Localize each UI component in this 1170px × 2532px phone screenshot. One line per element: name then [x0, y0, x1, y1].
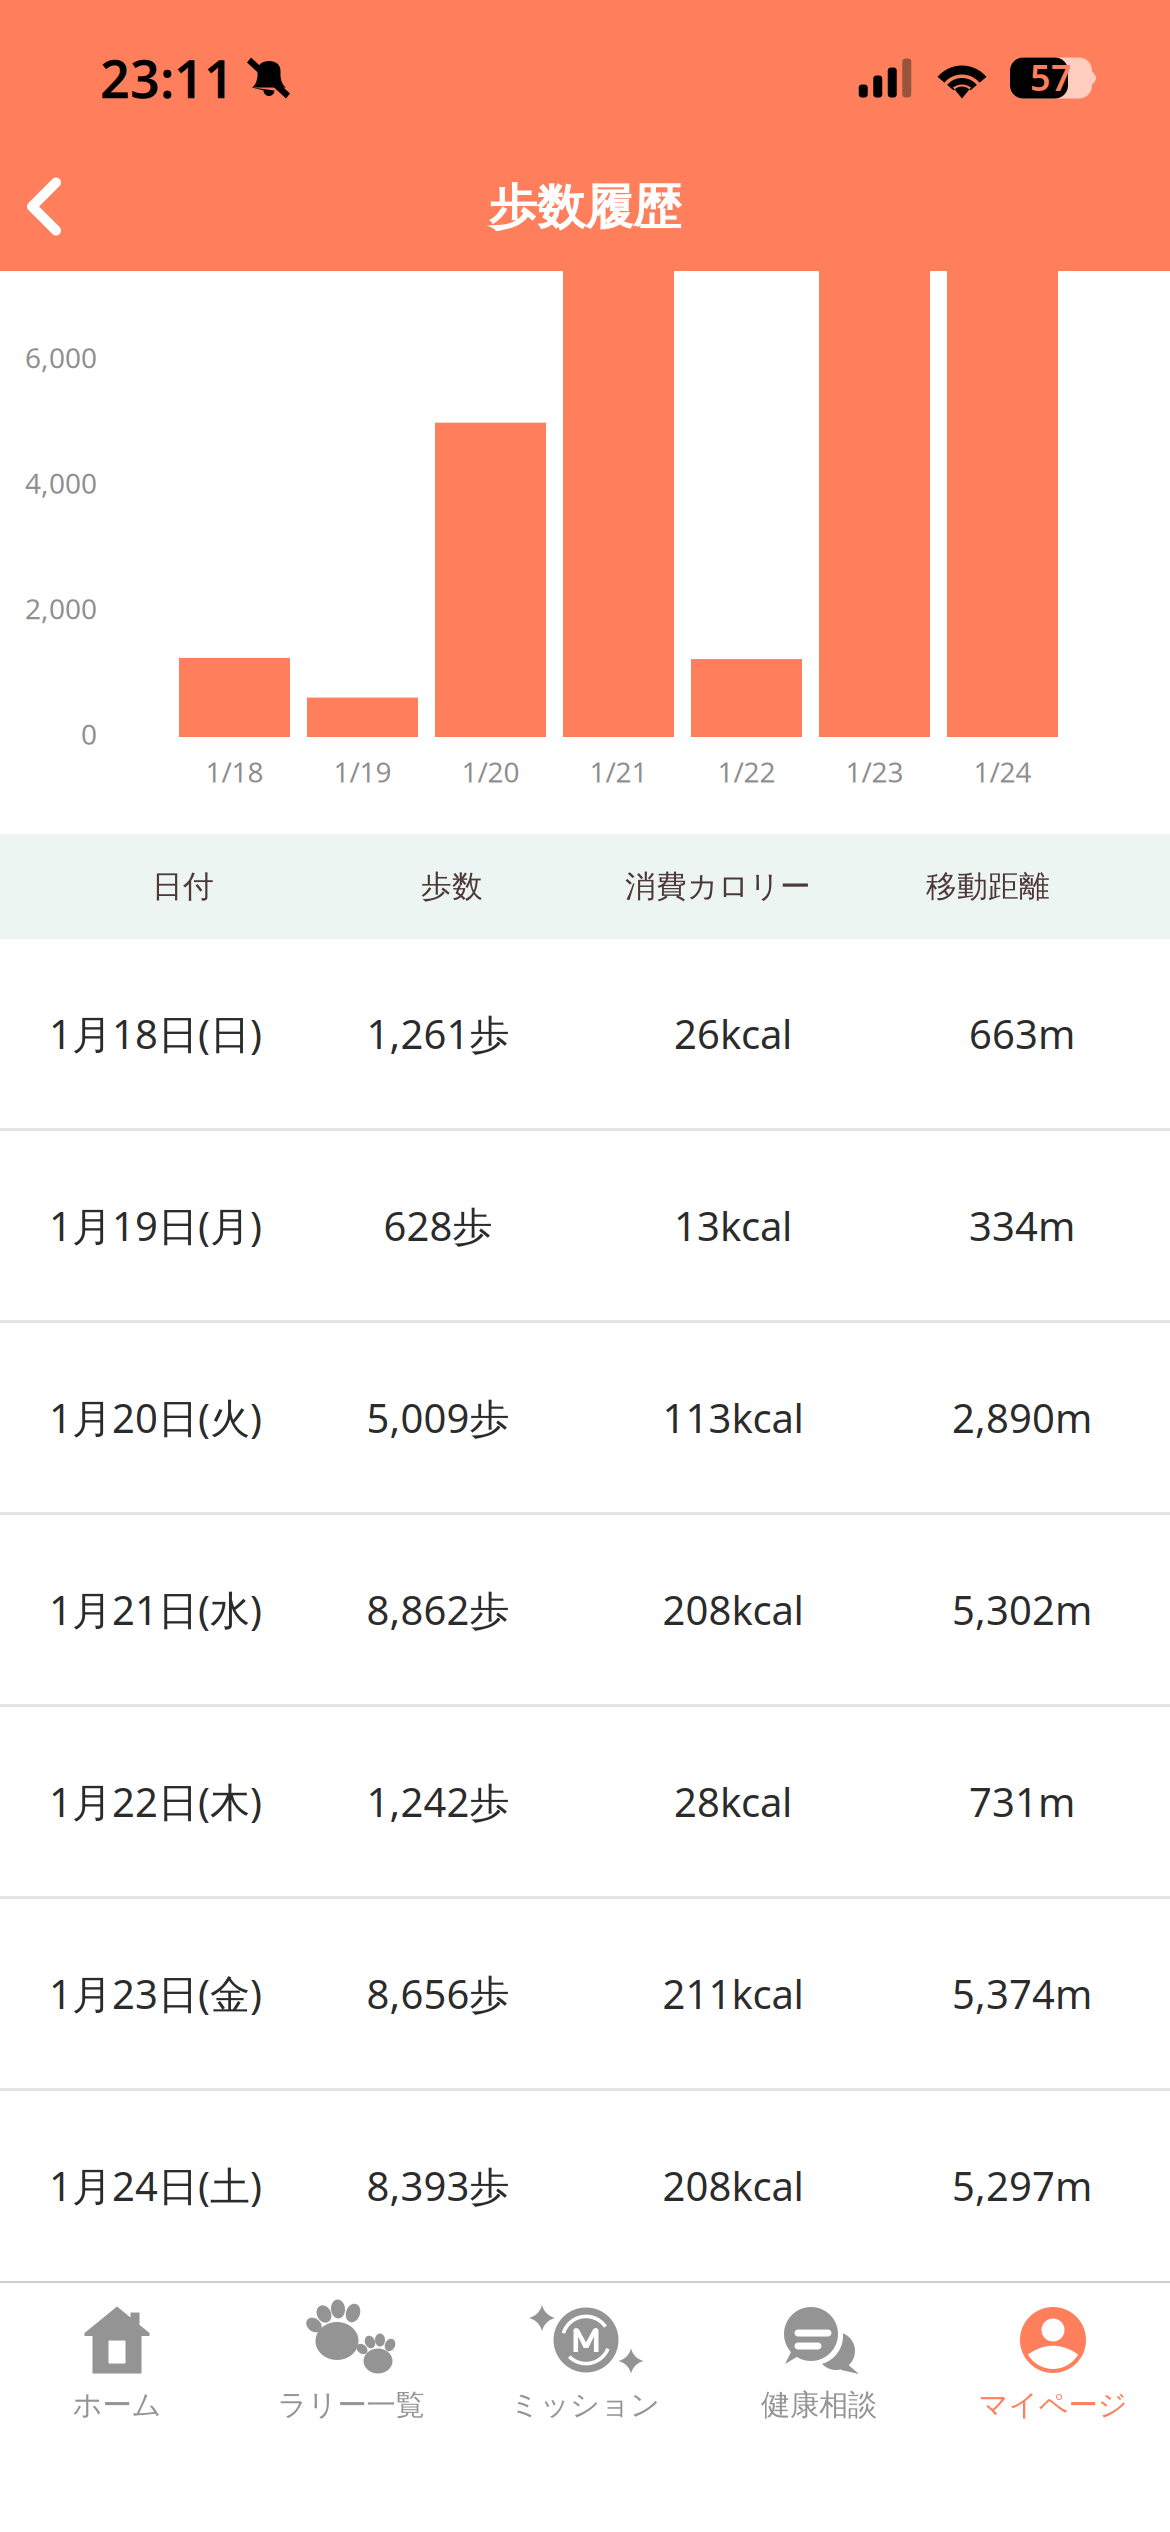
staticText: ミッション — [510, 2387, 660, 2423]
staticText: 歩数履歴 — [489, 178, 681, 237]
staticText: 5,302m — [952, 1583, 1092, 1636]
staticText: 0 — [81, 715, 97, 753]
staticText: 208kcal — [662, 1583, 803, 1636]
staticText: 1月18日(日) — [49, 1007, 262, 1060]
staticText: 8,862歩 — [366, 1583, 509, 1636]
staticText: 1月19日(月) — [49, 1199, 262, 1252]
staticText: 1/24 — [973, 753, 1031, 790]
staticText: 1/21 — [589, 753, 647, 790]
button[interactable]: ホーム — [0, 2283, 234, 2433]
staticText: 歩数 — [421, 868, 483, 905]
staticText: 334m — [969, 1199, 1075, 1252]
staticText: 1/22 — [717, 753, 775, 790]
button[interactable]: 健康相談 — [702, 2283, 936, 2433]
staticText: 628歩 — [383, 1199, 492, 1252]
staticText: 1月21日(水) — [49, 1583, 262, 1636]
staticText: 5,297m — [952, 2159, 1092, 2212]
staticText: 6,000 — [25, 339, 97, 376]
staticText: 1月24日(土) — [49, 2159, 262, 2212]
staticText: 1月22日(木) — [49, 1775, 262, 1828]
staticText: 5,009歩 — [366, 1391, 509, 1444]
staticText: 消費カロリー — [625, 868, 811, 905]
staticText: 日付 — [152, 868, 214, 905]
staticText: 健康相談 — [761, 2387, 877, 2423]
staticText: 1/23 — [845, 753, 903, 790]
staticText: マイページ — [978, 2387, 1127, 2423]
button[interactable]: ラリー一覧 — [234, 2283, 468, 2433]
staticText: 26kcal — [674, 1007, 792, 1060]
staticText: ラリー一覧 — [277, 2387, 424, 2423]
staticText: 28kcal — [674, 1775, 792, 1828]
staticText: 13kcal — [674, 1199, 792, 1252]
staticText: 23:11 — [100, 43, 234, 113]
staticText: 211kcal — [662, 1967, 803, 2020]
staticText: 113kcal — [662, 1391, 803, 1444]
button[interactable]: 戻る — [0, 132, 88, 271]
staticText: 57 — [1030, 53, 1072, 101]
staticText: ホーム — [72, 2387, 161, 2423]
staticText: 8,393歩 — [366, 2159, 509, 2212]
staticText: 731m — [969, 1775, 1075, 1828]
staticText: 1月23日(金) — [49, 1967, 262, 2020]
staticText: 1/19 — [333, 753, 391, 790]
staticText: 2,000 — [25, 590, 97, 627]
staticText: 1/18 — [205, 753, 263, 790]
staticText: 8,656歩 — [366, 1967, 509, 2020]
staticText: 1月20日(火) — [49, 1391, 262, 1444]
staticText: 1/20 — [461, 753, 519, 790]
staticText: 移動距離 — [926, 868, 1050, 905]
staticText: 663m — [969, 1007, 1075, 1060]
staticText: 5,374m — [952, 1967, 1092, 2020]
staticText: 208kcal — [662, 2159, 803, 2212]
staticText: 4,000 — [25, 464, 97, 502]
button[interactable]: ミッション — [468, 2283, 702, 2433]
staticText: 1,261歩 — [366, 1007, 509, 1060]
staticText: 2,890m — [952, 1391, 1092, 1444]
button[interactable]: マイページ — [936, 2283, 1170, 2433]
staticText: 1,242歩 — [366, 1775, 509, 1828]
